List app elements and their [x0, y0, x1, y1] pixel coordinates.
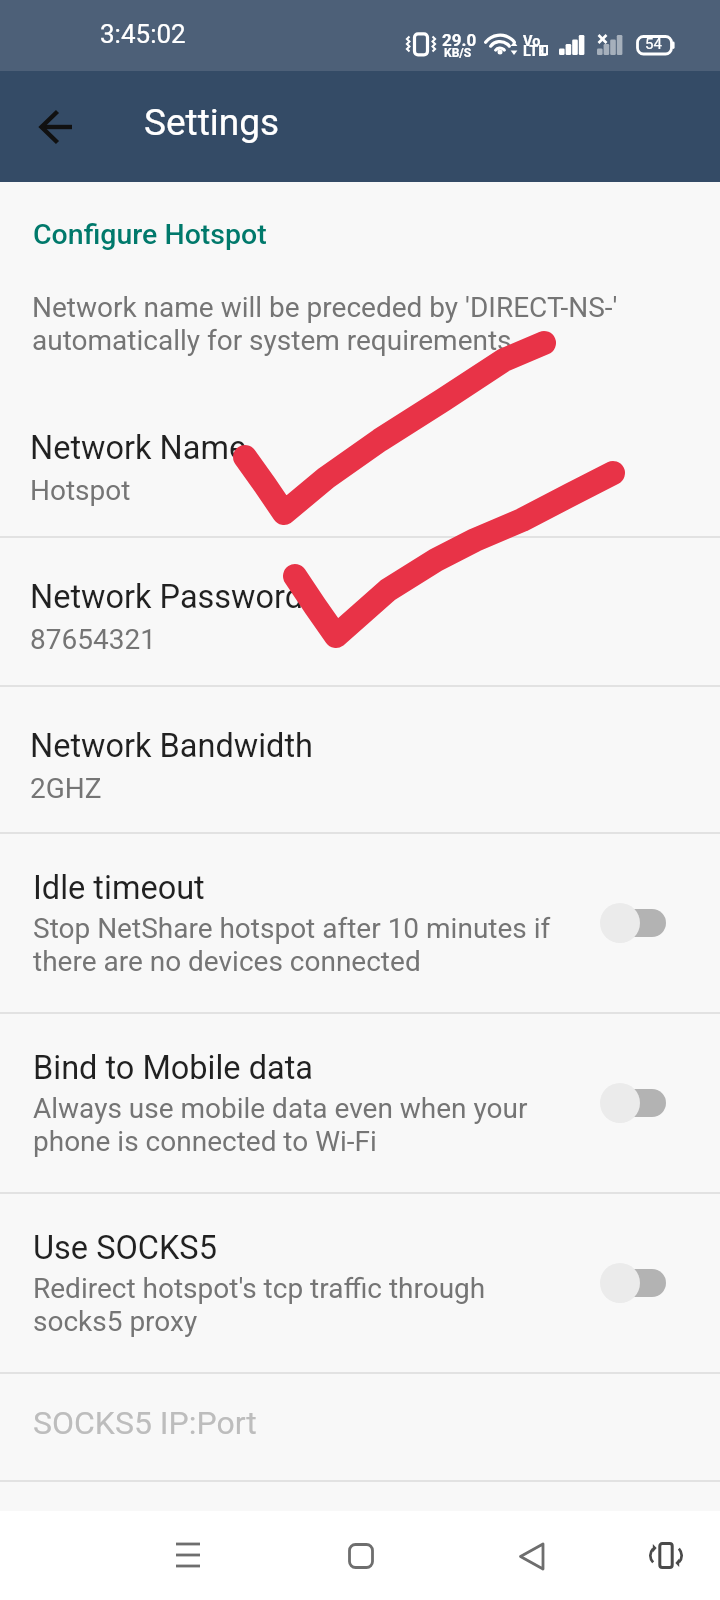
staticText: Always use mobile data even when your ph…	[33, 1092, 563, 1158]
button[interactable]: Toggle	[600, 1081, 666, 1125]
button[interactable]: Network Password	[0, 538, 720, 685]
button[interactable]: Rotate screen	[626, 1522, 706, 1588]
staticText: 87654321	[30, 623, 156, 656]
staticText: LTE	[523, 43, 547, 60]
staticText: Network name will be preceded by 'DIRECT…	[32, 291, 657, 357]
staticText: KB/S	[444, 46, 472, 60]
staticText: 2GHZ	[30, 772, 102, 805]
staticText: Bind to Mobile data	[33, 1049, 313, 1087]
staticText: Idle timeout	[33, 869, 205, 907]
button[interactable]: Toggle	[600, 901, 666, 945]
staticText: Settings	[144, 101, 280, 144]
staticText: Redirect hotspot's tcp traffic through s…	[33, 1272, 563, 1338]
button[interactable]: Toggle	[600, 1261, 666, 1305]
button[interactable]: Navigate up	[22, 93, 90, 161]
staticText: 3:45:02	[100, 19, 186, 49]
staticText: Network Password	[30, 578, 304, 616]
staticText: 29.0	[442, 30, 477, 50]
button[interactable]: Network Name	[0, 389, 720, 536]
button[interactable]: Idle timeout	[0, 834, 720, 1012]
button[interactable]: Bind to Mobile data	[0, 1014, 720, 1192]
button[interactable]: Home	[320, 1522, 400, 1588]
staticText: Stop NetShare hotspot after 10 minutes i…	[33, 912, 563, 978]
button[interactable]: SOCKS5 IP:Port	[0, 1374, 720, 1480]
button[interactable]: Network Bandwidth	[0, 687, 720, 832]
staticText: Hotspot	[30, 474, 131, 507]
staticText: Vo	[523, 33, 541, 50]
button[interactable]: Back	[492, 1522, 572, 1588]
staticText: SOCKS5 IP:Port	[33, 1404, 257, 1442]
staticText: Network Name	[30, 429, 247, 467]
staticText: 54	[645, 35, 662, 53]
staticText: Use SOCKS5	[33, 1229, 217, 1267]
button[interactable]: Recent apps	[148, 1522, 228, 1588]
staticText: Network Bandwidth	[30, 727, 313, 765]
staticText: Configure Hotspot	[33, 218, 267, 251]
button[interactable]: Use SOCKS5	[0, 1194, 720, 1372]
